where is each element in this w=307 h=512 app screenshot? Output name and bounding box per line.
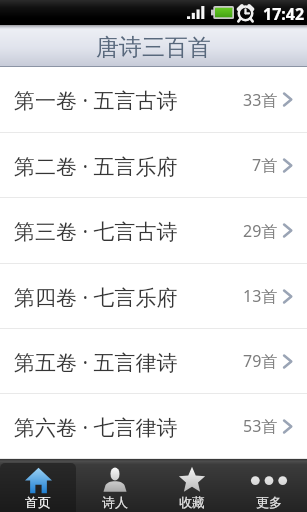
button[interactable]: 收藏 xyxy=(153,459,230,512)
staticText: 13首 xyxy=(243,285,278,307)
staticText: 首页 xyxy=(25,494,51,510)
staticText: 更多 xyxy=(256,494,282,510)
staticText: 第二卷 · 五言乐府 xyxy=(14,152,178,181)
staticText: 79首 xyxy=(243,350,278,372)
staticText: 53首 xyxy=(243,415,278,437)
button[interactable]: 诗人 xyxy=(76,459,153,512)
other: 诗人 xyxy=(103,467,127,492)
staticText: 唐诗三百首 xyxy=(96,33,211,62)
staticText: 第一卷 · 五言古诗 xyxy=(14,86,178,115)
staticText: 第三卷 · 七言古诗 xyxy=(14,217,178,246)
staticText: 收藏 xyxy=(179,494,205,510)
button[interactable]: 第五卷 · 五言律诗 xyxy=(0,329,307,394)
other: 收藏 xyxy=(179,467,205,493)
button[interactable]: 更多 xyxy=(230,459,307,512)
button[interactable]: 第二卷 · 五言乐府 xyxy=(0,133,307,198)
button[interactable]: 第四卷 · 七言乐府 xyxy=(0,264,307,329)
staticText: 29首 xyxy=(243,220,278,242)
staticText: 第六卷 · 七言律诗 xyxy=(14,413,178,442)
other: 更多 xyxy=(251,467,287,493)
button[interactable]: 第一卷 · 五言古诗 xyxy=(0,67,307,133)
staticText: 第四卷 · 七言乐府 xyxy=(14,283,178,312)
button[interactable]: 首页 xyxy=(0,459,76,512)
button[interactable]: 第三卷 · 七言古诗 xyxy=(0,198,307,264)
button[interactable]: 第六卷 · 七言律诗 xyxy=(0,394,307,459)
staticText: 7首 xyxy=(252,154,278,176)
staticText: 诗人 xyxy=(102,494,128,510)
staticText: 33首 xyxy=(243,89,278,111)
other: 首页 xyxy=(25,467,52,494)
staticText: 第五卷 · 五言律诗 xyxy=(14,348,178,377)
staticText: 17:42 xyxy=(263,3,305,25)
